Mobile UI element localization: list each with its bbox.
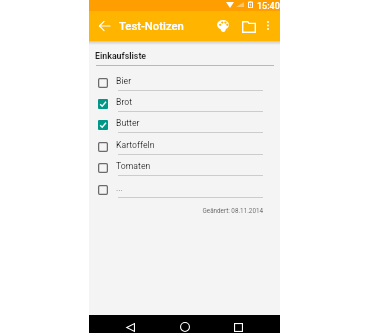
button[interactable]: More options bbox=[262, 19, 274, 31]
staticText: Brot bbox=[116, 97, 133, 107]
staticText: Kartoffeln bbox=[116, 140, 155, 150]
staticText: 15:40 bbox=[257, 1, 280, 12]
button[interactable]: Back bbox=[119, 315, 142, 333]
staticText: Test-Notizen bbox=[119, 20, 184, 33]
staticText: ... bbox=[116, 183, 123, 193]
staticText: Geändert: 08.11.2014 bbox=[89, 207, 263, 214]
button[interactable]: Butter bbox=[89, 111, 280, 132]
button[interactable]: Brot bbox=[89, 90, 280, 111]
button[interactable]: Move to folder bbox=[241, 19, 256, 34]
button[interactable]: Recent apps bbox=[227, 315, 250, 333]
button[interactable]: Home bbox=[173, 315, 196, 333]
button[interactable]: Bier bbox=[89, 69, 280, 90]
staticText: Butter bbox=[116, 118, 140, 128]
button[interactable]: Tomaten bbox=[89, 154, 280, 175]
button[interactable]: Navigate up bbox=[97, 18, 112, 33]
staticText: Einkaufsliste bbox=[95, 51, 147, 61]
staticText: Tomaten bbox=[116, 161, 151, 171]
button[interactable]: ... bbox=[89, 176, 280, 197]
button[interactable]: Change colour bbox=[215, 18, 230, 33]
staticText: Bier bbox=[116, 76, 132, 86]
button[interactable]: Kartoffeln bbox=[89, 133, 280, 154]
